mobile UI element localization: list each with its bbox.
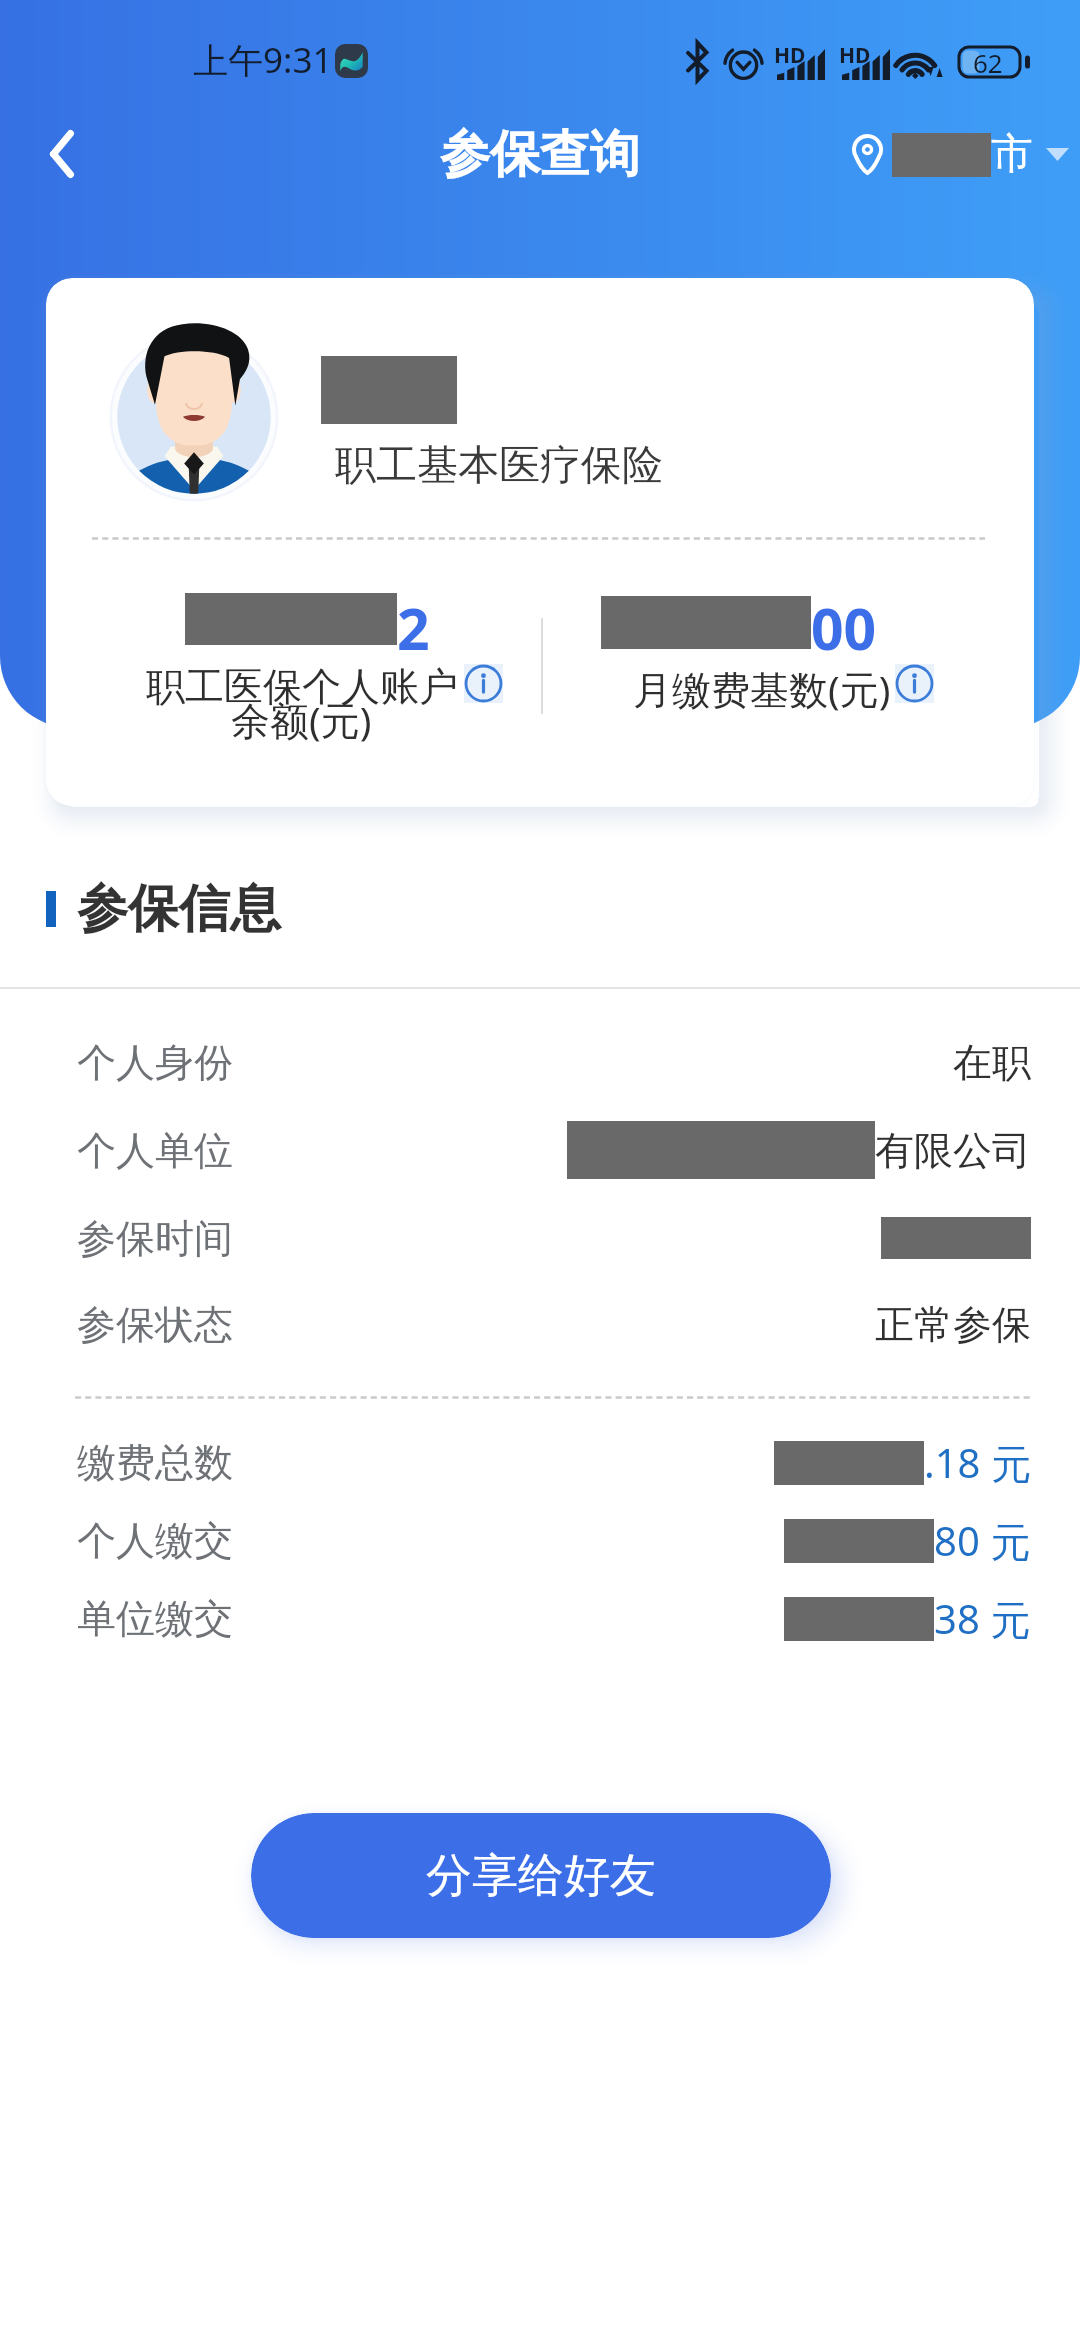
staticText: 有限公司 — [875, 1126, 1031, 1175]
button[interactable]: Back — [10, 102, 114, 206]
staticText: 62 — [973, 45, 1003, 77]
button[interactable]: 分享给好友 — [251, 1813, 831, 1938]
button[interactable]: Monthly base info — [895, 664, 934, 703]
staticText: 参保状态 — [77, 1300, 233, 1349]
staticText: 月缴费基数(元) — [633, 662, 891, 715]
button[interactable]: 个人单位 — [0, 1108, 1080, 1192]
button[interactable]: 参保信息 — [20, 858, 340, 958]
staticText: 单位缴交 — [77, 1594, 233, 1643]
button[interactable]: 个人缴交 — [0, 1498, 1080, 1582]
staticText: 00 — [811, 589, 877, 667]
staticText: 市 — [991, 128, 1033, 181]
staticText: 职工医保个人账户 — [146, 662, 458, 711]
staticText: 个人身份 — [77, 1038, 233, 1087]
staticText: HD — [839, 41, 871, 70]
staticText: 上午9:31 — [193, 36, 333, 84]
staticText: 2 — [397, 589, 430, 667]
button[interactable]: Select city — [846, 120, 1075, 189]
button[interactable]: 缴费总数 — [0, 1420, 1080, 1504]
button[interactable]: 个人身份 — [0, 1020, 1080, 1104]
button[interactable]: 参保时间 — [0, 1196, 1080, 1280]
staticText: 个人单位 — [77, 1126, 233, 1175]
staticText: 职工基本医疗保险 — [335, 440, 663, 492]
staticText: 余额(元) — [231, 693, 372, 746]
staticText: 参保时间 — [77, 1214, 233, 1263]
button[interactable]: Account balance info — [464, 664, 503, 703]
button[interactable]: 参保状态 — [0, 1282, 1080, 1366]
staticText: .18 元 — [924, 1435, 1031, 1490]
button[interactable]: 单位缴交 — [0, 1576, 1080, 1660]
staticText: 38 元 — [934, 1591, 1031, 1646]
staticText: 缴费总数 — [77, 1438, 233, 1487]
staticText: HD — [774, 41, 806, 70]
staticText: 参保查询 — [440, 123, 640, 186]
staticText: 参保信息 — [77, 877, 281, 941]
staticText: 分享给好友 — [426, 1847, 656, 1905]
staticText: 在职 — [953, 1038, 1031, 1087]
staticText: 80 元 — [934, 1513, 1031, 1568]
staticText: 正常参保 — [875, 1300, 1031, 1349]
staticText: 个人缴交 — [77, 1516, 233, 1565]
